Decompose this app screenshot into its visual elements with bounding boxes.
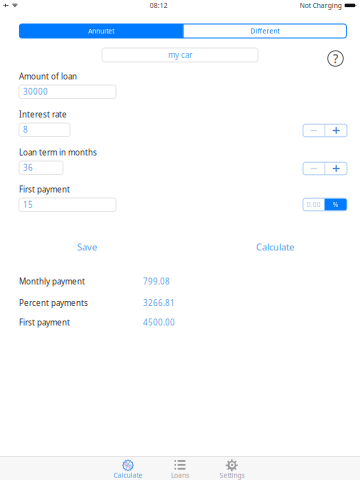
button[interactable]: Save — [59, 238, 115, 256]
button[interactable]: Annuitet — [19, 24, 183, 38]
staticText: my car — [168, 50, 192, 60]
staticText: Different — [251, 27, 280, 35]
button[interactable]: 0.00 — [303, 198, 324, 211]
button[interactable]: Different — [184, 24, 346, 38]
button[interactable]: Increase — [325, 162, 347, 175]
staticText: Calculate — [113, 471, 142, 479]
staticText: Interest rate — [19, 109, 67, 120]
staticText: Settings — [219, 471, 244, 479]
button[interactable]: Settings — [206, 459, 258, 478]
staticText: Annuitet — [88, 27, 114, 35]
button[interactable]: my car — [102, 48, 258, 62]
staticText: Loan term in months — [19, 147, 97, 158]
staticText: Percent payments — [19, 298, 88, 308]
button[interactable]: Calculate — [242, 238, 308, 256]
button[interactable]: Increase — [325, 124, 347, 137]
staticText: % — [333, 200, 339, 209]
staticText: First payment — [19, 317, 70, 328]
staticText: Not Charging — [300, 1, 342, 10]
staticText: 0.00 — [307, 200, 321, 209]
staticText: Save — [77, 241, 97, 253]
staticText: First payment — [19, 184, 70, 195]
button[interactable]: % — [102, 459, 154, 478]
staticText: 15 — [23, 199, 33, 210]
staticText: 08:12 — [150, 1, 168, 10]
button[interactable]: Help — [328, 51, 343, 66]
button[interactable]: Decrease — [303, 162, 325, 175]
staticText: Amount of loan — [19, 71, 77, 82]
button[interactable]: Decrease — [303, 124, 325, 137]
staticText: Monthly payment — [19, 276, 85, 287]
staticText: Loans — [171, 471, 189, 479]
staticText: % — [124, 459, 132, 471]
staticText: 8 — [23, 124, 28, 135]
button[interactable]: Loans — [154, 459, 206, 478]
button[interactable]: % — [324, 198, 347, 211]
staticText: Calculate — [256, 241, 294, 253]
staticText: 30000 — [23, 86, 48, 97]
staticText: ? — [333, 50, 338, 66]
staticText: 3266.81 — [143, 298, 175, 308]
staticText: 36 — [23, 162, 33, 173]
staticText: 799.08 — [143, 276, 170, 287]
staticText: 4500.00 — [143, 317, 175, 328]
